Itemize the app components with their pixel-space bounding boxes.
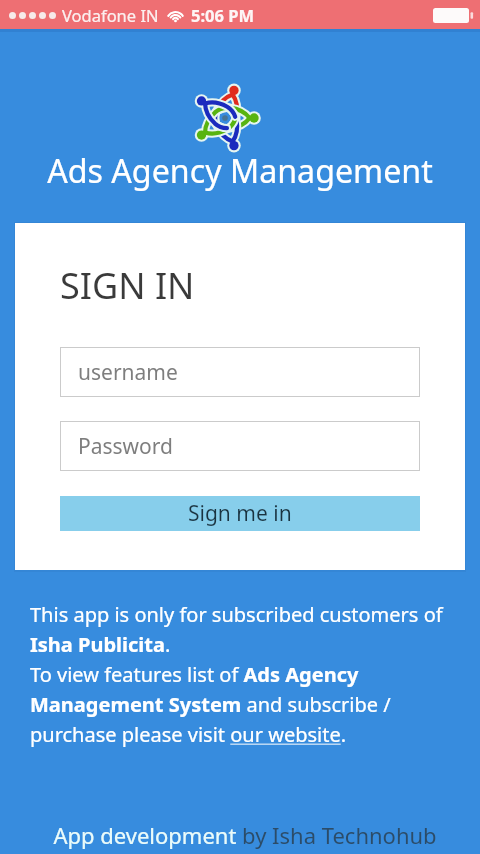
staticText: Sign me in <box>188 499 292 528</box>
button[interactable]: Password <box>60 421 420 471</box>
staticText: SIGN IN <box>60 261 195 310</box>
staticText: App development by Isha Technohub <box>10 820 480 850</box>
button[interactable]: Sign me in <box>60 496 420 531</box>
staticText: username <box>78 358 178 387</box>
staticText: Vodafone IN <box>62 4 159 26</box>
staticText: 5:06 PM <box>191 4 255 26</box>
staticText: This app is only for subscribed customer… <box>30 601 455 748</box>
button[interactable]: username <box>60 347 420 397</box>
staticText: Password <box>78 432 173 461</box>
staticText: Ads Agency Management <box>0 149 480 193</box>
